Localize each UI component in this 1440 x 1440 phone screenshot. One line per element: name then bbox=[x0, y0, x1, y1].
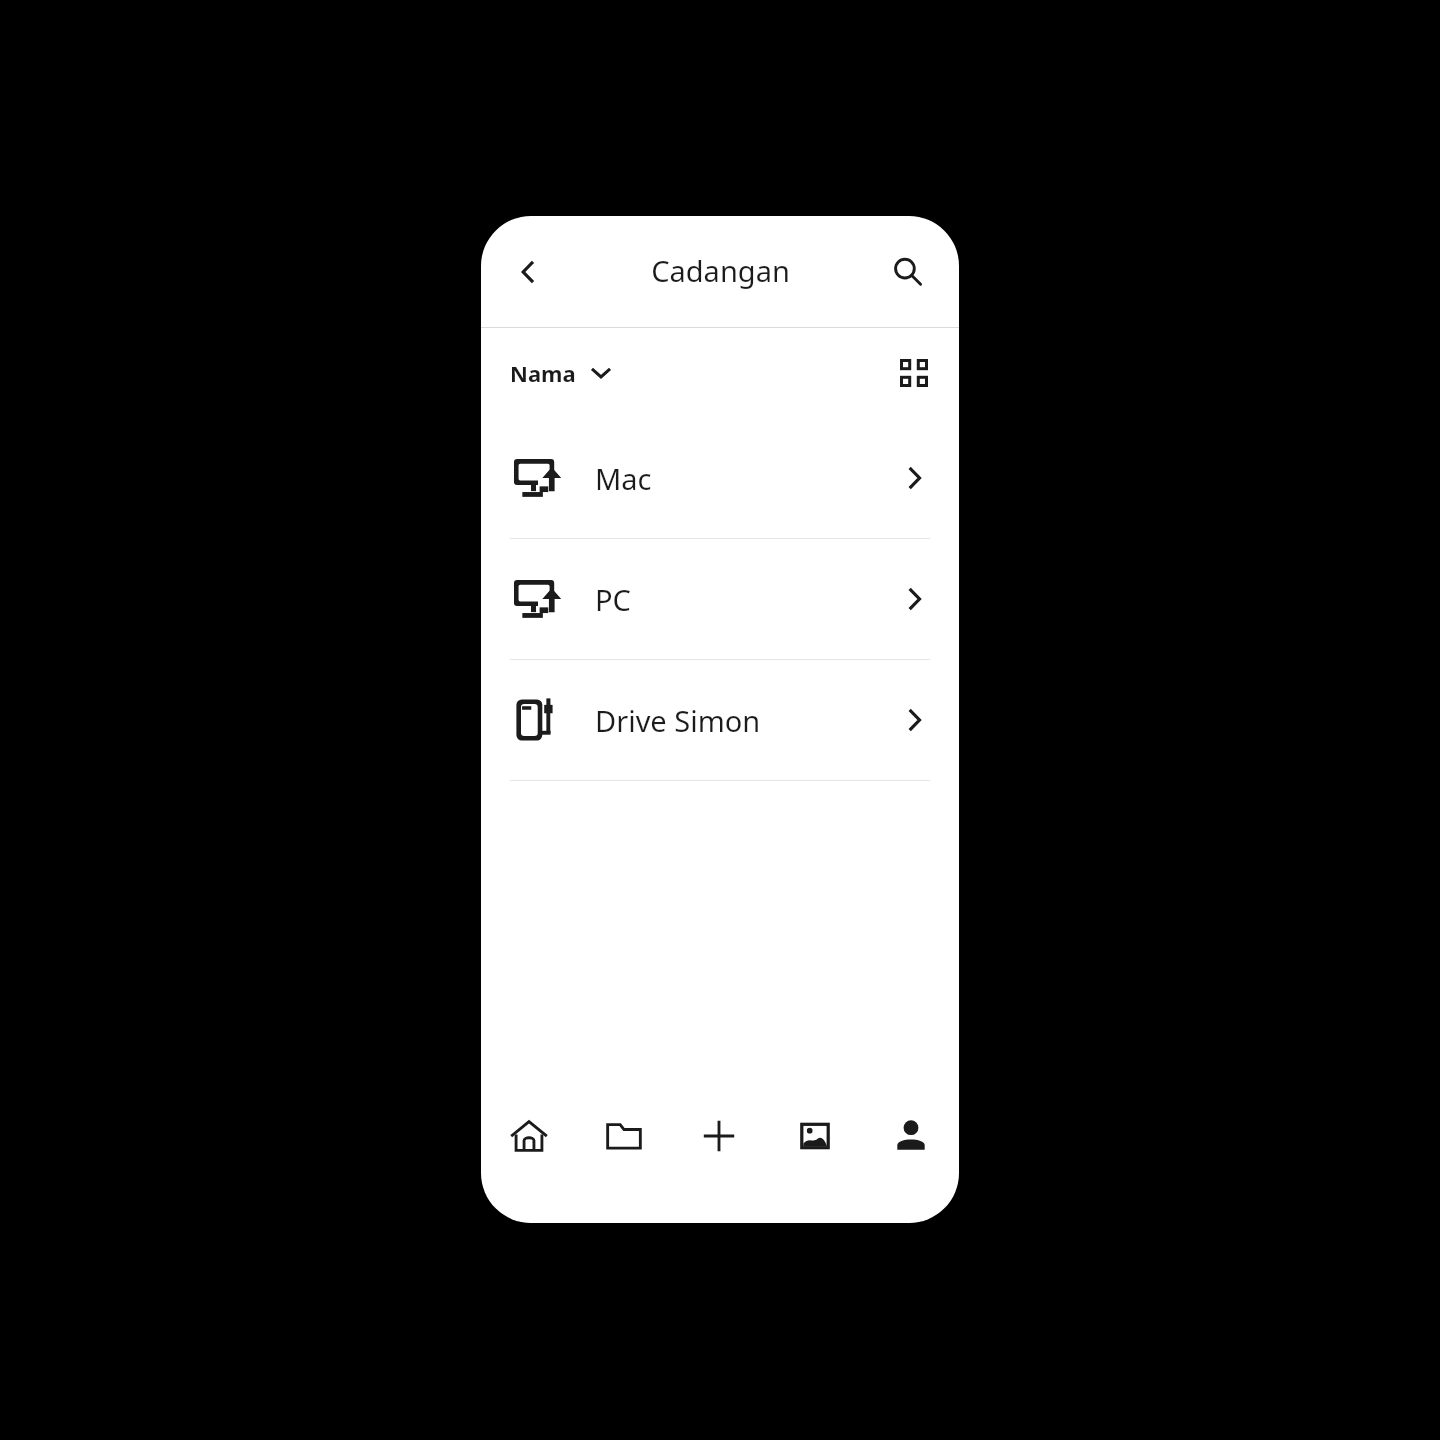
button[interactable]: Account bbox=[863, 1090, 959, 1182]
button[interactable]: Mac bbox=[481, 418, 959, 538]
button[interactable]: Grid view bbox=[883, 342, 945, 404]
button[interactable]: Add bbox=[671, 1090, 767, 1182]
button[interactable]: Drive Simon bbox=[481, 660, 959, 780]
button[interactable]: Back bbox=[495, 239, 561, 305]
button[interactable]: Photos bbox=[767, 1090, 863, 1182]
staticText: PC bbox=[595, 580, 900, 619]
staticText: Nama bbox=[510, 358, 576, 388]
staticText: Cadangan bbox=[651, 251, 790, 290]
button[interactable]: Home bbox=[481, 1090, 576, 1182]
staticText: Drive Simon bbox=[595, 701, 900, 740]
staticText: Mac bbox=[595, 459, 900, 498]
button[interactable]: Files bbox=[576, 1090, 671, 1182]
button[interactable]: Search bbox=[875, 239, 941, 305]
button[interactable]: PC bbox=[481, 539, 959, 659]
button[interactable]: Nama bbox=[503, 350, 619, 396]
